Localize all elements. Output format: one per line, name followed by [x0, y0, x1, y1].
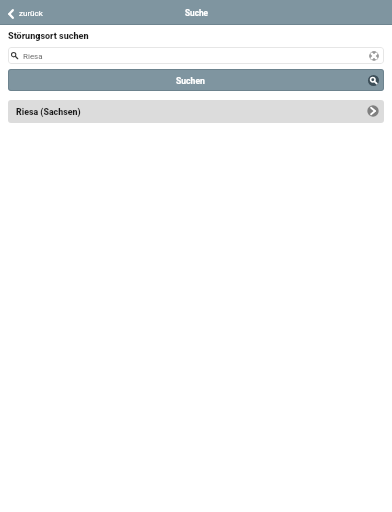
button[interactable]: Eingabe löschen: [369, 51, 379, 61]
button[interactable]: Riesa (Sachsen): [8, 100, 384, 123]
staticText: Riesa: [23, 52, 43, 61]
button[interactable]: zurück: [0, 0, 51, 25]
button[interactable]: Suchen: [8, 69, 384, 91]
staticText: Suchen: [176, 76, 205, 86]
staticText: Suche: [185, 8, 208, 18]
button[interactable]: Riesa: [8, 47, 384, 64]
staticText: Störungsort suchen: [8, 31, 89, 42]
other: Ort auswählen: [367, 105, 379, 117]
staticText: Riesa (Sachsen): [16, 107, 81, 117]
staticText: zurück: [19, 9, 43, 18]
